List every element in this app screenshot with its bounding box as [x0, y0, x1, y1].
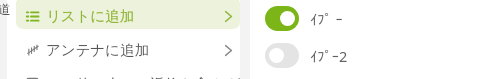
button[interactable]: Off: [250, 37, 477, 74]
button[interactable]: TLに他の人への返信を含める: [7, 67, 240, 79]
button[interactable]: On: [250, 0, 477, 37]
staticText: TLに他の人への返信を含める: [46, 73, 239, 79]
other: On: [265, 6, 299, 31]
staticText: ｲﾌﾟ ｰ: [310, 9, 343, 29]
staticText: アンテナに追加: [46, 41, 150, 59]
staticText: リストに追加: [46, 7, 135, 25]
other: Off: [265, 43, 299, 68]
staticText: 道: [0, 1, 6, 17]
staticText: ｲﾌﾟｰ2: [310, 46, 348, 66]
button[interactable]: アンテナに追加: [7, 34, 240, 66]
button[interactable]: リストに追加: [7, 0, 240, 32]
